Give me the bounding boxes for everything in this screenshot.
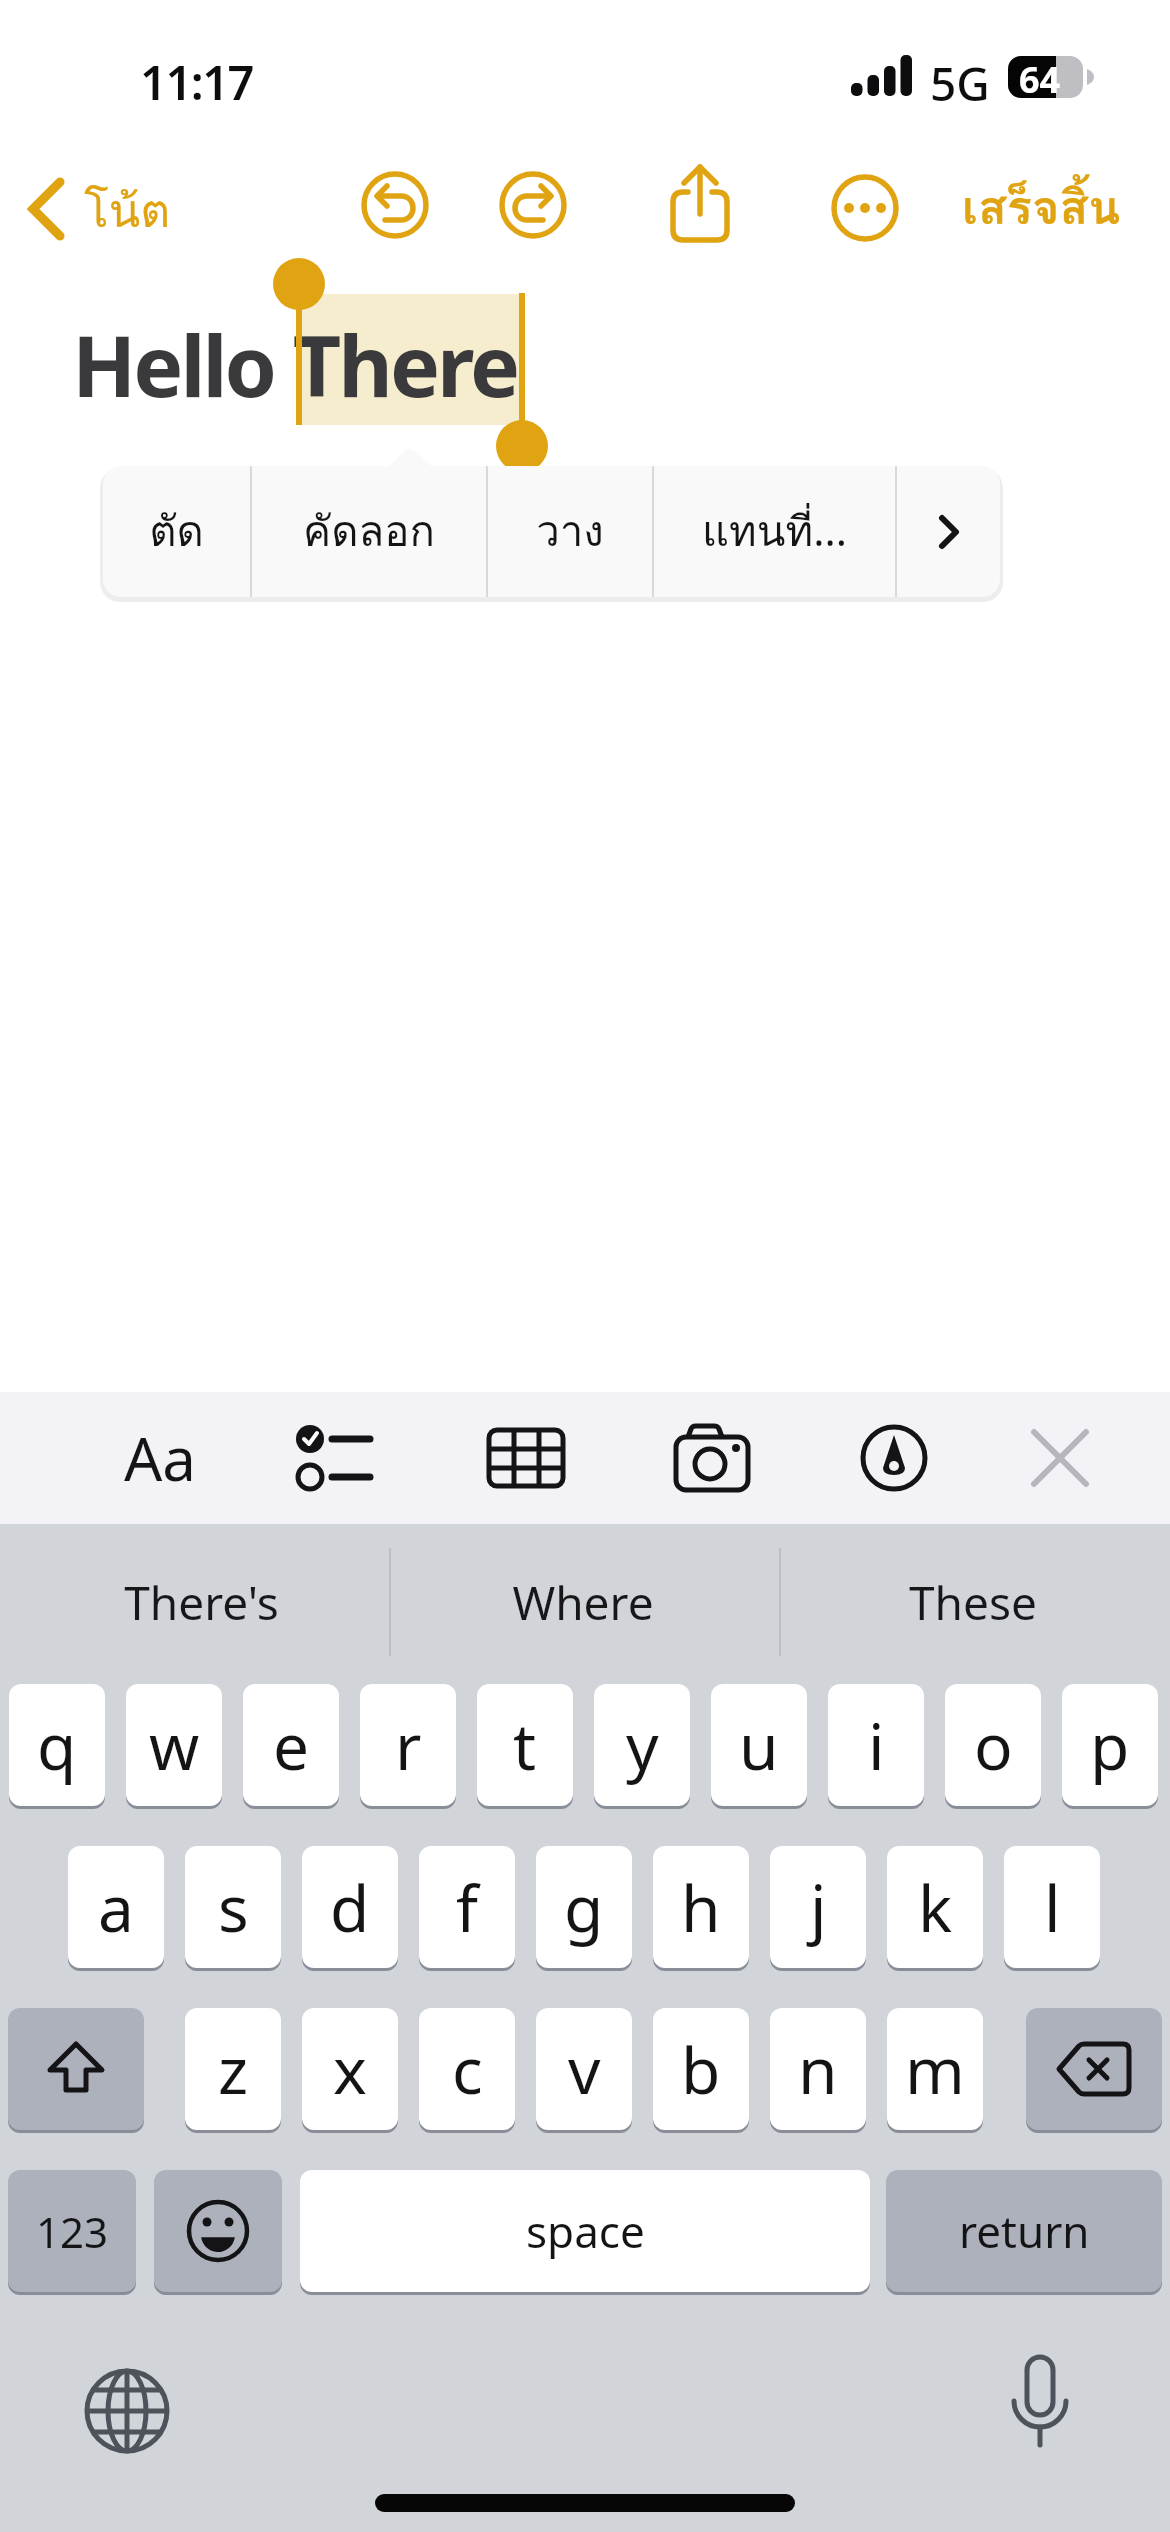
button[interactable]: f xyxy=(419,1846,515,1968)
button[interactable]: เสร็จสิ้น xyxy=(946,170,1136,242)
button[interactable] xyxy=(154,2170,282,2292)
button[interactable] xyxy=(66,2350,188,2472)
staticText: h xyxy=(681,1864,721,1951)
staticText: y xyxy=(626,1702,659,1789)
button[interactable]: t xyxy=(477,1684,573,1806)
button[interactable]: z xyxy=(185,2008,281,2130)
button[interactable] xyxy=(980,2340,1100,2470)
staticText: คัดลอก xyxy=(303,498,435,565)
staticText: There's xyxy=(124,1571,279,1634)
staticText: 123 xyxy=(36,2203,109,2260)
button[interactable]: d xyxy=(302,1846,398,1968)
button[interactable]: n xyxy=(770,2008,866,2130)
staticText: space xyxy=(526,2201,645,2261)
button[interactable]: y xyxy=(594,1684,690,1806)
button[interactable]: m xyxy=(887,2008,983,2130)
button[interactable]: l xyxy=(1004,1846,1100,1968)
staticText: q xyxy=(37,1702,77,1789)
staticText: t xyxy=(513,1702,537,1789)
button[interactable]: Where xyxy=(423,1564,743,1640)
button[interactable]: s xyxy=(185,1846,281,1968)
staticText: g xyxy=(564,1864,604,1951)
staticText: 5G xyxy=(930,52,990,115)
button[interactable]: 123 xyxy=(8,2170,136,2292)
staticText: 11:17 xyxy=(140,50,254,114)
staticText: Hello There xyxy=(72,307,518,421)
button[interactable]: p xyxy=(1062,1684,1158,1806)
staticText: แทนที่... xyxy=(702,498,847,565)
button[interactable]: r xyxy=(360,1684,456,1806)
staticText: Aa xyxy=(124,1417,196,1499)
button[interactable] xyxy=(360,170,430,240)
staticText: ตัด xyxy=(149,498,204,565)
button[interactable]: v xyxy=(536,2008,632,2130)
button[interactable]: b xyxy=(653,2008,749,2130)
button[interactable]: There's xyxy=(36,1564,366,1640)
button[interactable] xyxy=(834,1412,954,1504)
button[interactable] xyxy=(664,160,736,248)
button[interactable]: u xyxy=(711,1684,807,1806)
staticText: Where xyxy=(512,1571,654,1634)
staticText: u xyxy=(739,1702,779,1789)
staticText: โน้ต xyxy=(84,174,171,247)
button[interactable]: a xyxy=(68,1846,164,1968)
staticText: l xyxy=(1044,1864,1061,1951)
staticText: These xyxy=(909,1571,1037,1634)
staticText: x xyxy=(333,2026,367,2113)
button[interactable]: space xyxy=(300,2170,870,2292)
button[interactable] xyxy=(466,1412,586,1504)
button[interactable] xyxy=(652,1412,772,1504)
button[interactable]: q xyxy=(9,1684,105,1806)
staticText: o xyxy=(974,1702,1013,1789)
button[interactable] xyxy=(897,466,1000,597)
staticText: e xyxy=(273,1702,310,1789)
button[interactable]: c xyxy=(419,2008,515,2130)
staticText: d xyxy=(330,1864,370,1951)
button[interactable]: w xyxy=(126,1684,222,1806)
button[interactable]: i xyxy=(828,1684,924,1806)
staticText: เสร็จสิ้น xyxy=(962,170,1121,242)
staticText: n xyxy=(798,2026,838,2113)
button[interactable] xyxy=(498,170,568,240)
button[interactable]: o xyxy=(945,1684,1041,1806)
button[interactable]: คัดลอก xyxy=(252,466,486,597)
staticText: i xyxy=(868,1702,885,1789)
button[interactable]: ตัด xyxy=(103,466,250,597)
staticText: m xyxy=(905,2026,965,2113)
staticText: j xyxy=(810,1864,827,1951)
staticText: p xyxy=(1090,1702,1130,1789)
staticText: w xyxy=(149,1702,200,1789)
button[interactable] xyxy=(8,2008,144,2130)
staticText: วาง xyxy=(536,498,604,565)
staticText: f xyxy=(456,1864,479,1951)
button[interactable]: h xyxy=(653,1846,749,1968)
staticText: v xyxy=(568,2026,601,2113)
button[interactable]: x xyxy=(302,2008,398,2130)
button[interactable]: These xyxy=(813,1564,1133,1640)
button[interactable] xyxy=(1026,2008,1162,2130)
staticText: r xyxy=(395,1702,422,1789)
button[interactable]: Aa xyxy=(100,1412,220,1504)
staticText: k xyxy=(918,1864,953,1951)
button[interactable]: g xyxy=(536,1846,632,1968)
staticText: return xyxy=(959,2201,1090,2261)
button[interactable] xyxy=(1000,1412,1120,1504)
staticText: 64 xyxy=(1019,55,1061,104)
button[interactable]: e xyxy=(243,1684,339,1806)
staticText: b xyxy=(681,2026,721,2113)
button[interactable] xyxy=(830,173,900,243)
staticText: s xyxy=(218,1864,249,1951)
button[interactable]: วาง xyxy=(488,466,652,597)
button[interactable]: k xyxy=(887,1846,983,1968)
button[interactable]: แทนที่... xyxy=(654,466,895,597)
staticText: a xyxy=(98,1864,134,1951)
button[interactable] xyxy=(280,1412,400,1504)
staticText: c xyxy=(452,2026,483,2113)
button[interactable]: return xyxy=(886,2170,1162,2292)
button[interactable]: โน้ต xyxy=(14,166,194,250)
button[interactable]: j xyxy=(770,1846,866,1968)
staticText: z xyxy=(218,2026,249,2113)
